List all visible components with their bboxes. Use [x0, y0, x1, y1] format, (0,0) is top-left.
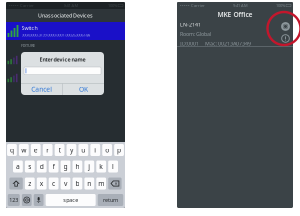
- button[interactable]: Fixture A: [6, 51, 125, 69]
- button[interactable]: t: [55, 144, 64, 156]
- staticText: 100%: [108, 3, 117, 8]
- button[interactable]: Information: [281, 34, 290, 43]
- staticText: l: [112, 162, 114, 171]
- button[interactable]: u: [78, 144, 88, 156]
- staticText: OK: [79, 85, 88, 94]
- button[interactable]: r: [43, 144, 53, 156]
- staticText: Unassociated Devices: [38, 12, 93, 19]
- button[interactable]: OK: [63, 83, 104, 95]
- button[interactable]: Switch: [6, 22, 125, 40]
- staticText: k: [99, 162, 103, 171]
- staticText: p: [117, 146, 121, 154]
- staticText: u: [81, 146, 85, 154]
- button[interactable]: w: [19, 144, 29, 156]
- staticText: y: [70, 146, 73, 154]
- staticText: 00043000-3F39-0000-0001-00026300614A: [21, 32, 90, 38]
- staticText: 00043000-3F39-0000-0001-000263006: [20, 61, 82, 67]
- button[interactable]: space: [46, 194, 96, 206]
- staticText: •••••: [9, 3, 19, 8]
- staticText: Room: Global: [180, 30, 211, 38]
- button[interactable]: i: [90, 144, 100, 156]
- button[interactable]: x: [37, 177, 47, 189]
- button[interactable]: m: [96, 177, 106, 189]
- staticText: 00043000-3F39-0000-0001-000263006: [20, 79, 82, 85]
- staticText: i: [94, 146, 96, 154]
- staticText: ×: [115, 180, 118, 187]
- staticText: 100%: [276, 3, 285, 8]
- staticText: h: [75, 162, 79, 171]
- button[interactable]: Fixture B: [6, 69, 125, 87]
- staticText: j: [88, 162, 90, 171]
- button[interactable]: Settings: [281, 22, 290, 31]
- staticText: b: [75, 179, 79, 188]
- staticText: o: [105, 146, 109, 154]
- staticText: Carrier: [190, 3, 205, 8]
- staticText: f: [53, 162, 55, 171]
- button[interactable]: s: [25, 160, 35, 172]
- staticText: FIXTURE: [21, 43, 35, 48]
- staticText: Fixture B: [20, 71, 41, 78]
- staticText: space: [63, 196, 78, 204]
- button[interactable]: Delete: [108, 177, 122, 189]
- button[interactable]: v: [61, 177, 70, 189]
- button[interactable]: a: [13, 160, 23, 172]
- staticText: x: [40, 179, 44, 188]
- staticText: Switch: [21, 24, 37, 31]
- button[interactable]: k: [96, 160, 106, 172]
- button[interactable]: Next keyboard: [22, 194, 32, 206]
- button[interactable]: c: [49, 177, 58, 189]
- button[interactable]: g: [61, 160, 70, 172]
- staticText: m: [98, 179, 104, 188]
- staticText: c: [52, 179, 55, 188]
- staticText: 123: [9, 196, 18, 204]
- staticText: g: [63, 162, 67, 171]
- staticText: Mac: 00213A07349: [205, 40, 251, 47]
- button[interactable]: j: [84, 160, 94, 172]
- staticText: 9:41 AM: [233, 3, 248, 8]
- button[interactable]: p: [114, 144, 124, 156]
- staticText: w: [21, 146, 26, 154]
- staticText: Carrier: [19, 3, 34, 8]
- button[interactable]: o: [102, 144, 112, 156]
- staticText: d: [40, 162, 44, 171]
- button[interactable]: y: [67, 144, 76, 156]
- staticText: q: [10, 146, 14, 154]
- staticText: n: [87, 179, 91, 188]
- button[interactable]: n: [84, 177, 94, 189]
- staticText: s: [28, 162, 31, 171]
- button[interactable]: f: [49, 160, 58, 172]
- staticText: v: [64, 179, 67, 188]
- button[interactable]: h: [72, 160, 82, 172]
- button[interactable]: e: [31, 144, 41, 156]
- staticText: return: [103, 196, 118, 204]
- staticText: •••••: [180, 3, 190, 8]
- button[interactable]: b: [72, 177, 82, 189]
- staticText: r: [46, 146, 49, 154]
- staticText: 9:41 AM: [63, 3, 78, 8]
- staticText: z: [28, 179, 31, 188]
- staticText: ID:0001: [180, 40, 199, 47]
- staticText: e: [34, 146, 38, 154]
- button[interactable]: Cancel: [21, 83, 62, 95]
- button[interactable]: z: [25, 177, 35, 189]
- staticText: Fixture A: [20, 53, 41, 60]
- staticText: LN-2141: [180, 21, 201, 28]
- button[interactable]: return: [98, 194, 123, 206]
- staticText: Enter device name: [39, 56, 85, 63]
- button[interactable]: d: [37, 160, 47, 172]
- staticText: Cancel: [31, 85, 52, 94]
- staticText: MKE Office: [217, 10, 252, 19]
- staticText: t: [59, 146, 61, 154]
- button[interactable]: Dictation: [34, 194, 44, 206]
- button[interactable]: Shift: [9, 177, 23, 189]
- button[interactable]: q: [7, 144, 17, 156]
- button[interactable]: l: [108, 160, 118, 172]
- button[interactable]: 123: [8, 194, 20, 206]
- staticText: a: [16, 162, 20, 171]
